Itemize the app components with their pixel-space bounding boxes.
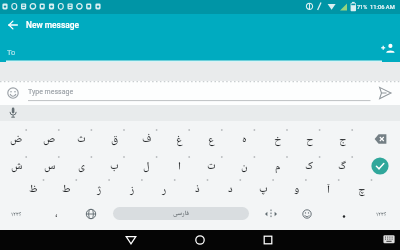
staticText: ف	[142, 132, 152, 147]
button[interactable]: ن	[228, 153, 261, 179]
button[interactable]: س	[33, 153, 66, 179]
button[interactable]	[117, 230, 145, 250]
staticText: ،	[55, 207, 58, 221]
button[interactable]: ق	[98, 126, 131, 152]
button[interactable]	[362, 153, 398, 179]
button[interactable]: ع	[195, 126, 228, 152]
button[interactable]	[379, 39, 399, 59]
button[interactable]: ،	[43, 202, 69, 226]
button[interactable]	[186, 230, 214, 250]
button[interactable]	[5, 85, 21, 101]
staticText: ح	[306, 132, 314, 147]
staticText: ج	[339, 132, 347, 147]
staticText: ت	[207, 159, 216, 174]
button[interactable]: آ	[312, 176, 345, 202]
staticText: د	[228, 182, 233, 197]
staticText: To	[7, 48, 16, 57]
button[interactable]	[258, 202, 284, 226]
button[interactable]: ا	[163, 153, 196, 179]
button[interactable]	[2, 15, 24, 35]
staticText: س	[44, 159, 56, 174]
staticText: ی	[78, 159, 85, 174]
button[interactable]: گ	[326, 153, 359, 179]
button[interactable]: پ	[247, 176, 280, 202]
staticText: ق	[111, 132, 119, 147]
button[interactable]	[332, 202, 356, 226]
button[interactable]: غ	[163, 126, 196, 152]
button[interactable]	[374, 83, 396, 103]
staticText: گ	[338, 159, 347, 174]
button[interactable]: ط	[50, 176, 83, 202]
staticText: ژ	[97, 182, 102, 197]
button[interactable]: فارسی	[113, 207, 249, 220]
button[interactable]: و	[280, 176, 313, 202]
button[interactable]: م	[261, 153, 294, 179]
button[interactable]: ک	[293, 153, 326, 179]
button[interactable]: ه	[228, 126, 261, 152]
staticText: چ	[358, 182, 366, 197]
staticText: Type message	[28, 88, 74, 96]
button[interactable]: ر	[148, 176, 181, 202]
button[interactable]: ص	[33, 126, 66, 152]
staticText: ز	[130, 182, 135, 197]
button[interactable]: ف	[130, 126, 163, 152]
button[interactable]	[254, 230, 282, 250]
button[interactable]	[362, 126, 398, 152]
staticText: New message	[26, 20, 80, 30]
button[interactable]	[378, 230, 400, 250]
staticText: خ	[274, 132, 282, 147]
button[interactable]: خ	[261, 126, 294, 152]
staticText: ع	[208, 132, 215, 147]
staticText: 71%	[357, 4, 368, 10]
button[interactable]: ذ	[181, 176, 214, 202]
staticText: ث	[77, 132, 86, 147]
staticText: ا	[178, 159, 181, 174]
staticText: ش	[11, 159, 23, 174]
staticText: و	[294, 182, 300, 197]
staticText: ب	[110, 159, 119, 174]
staticText: ط	[62, 182, 71, 197]
staticText: ذ	[195, 182, 200, 197]
staticText: ظ	[29, 182, 38, 197]
button[interactable]: ؟۱۲۳	[0, 202, 33, 226]
button[interactable]: د	[214, 176, 247, 202]
staticText: 11:06 AM	[370, 4, 395, 11]
button[interactable]	[78, 202, 104, 226]
staticText: م	[275, 159, 281, 174]
button[interactable]	[5, 105, 21, 121]
button[interactable]: ی	[65, 153, 98, 179]
button[interactable]: Type message	[28, 81, 358, 103]
staticText: ص	[43, 132, 56, 147]
button[interactable]	[294, 202, 320, 226]
staticText: فارسی	[173, 209, 190, 218]
button[interactable]: ش	[0, 153, 33, 179]
button[interactable]: To	[7, 44, 377, 60]
button[interactable]: ل	[130, 153, 163, 179]
staticText: ؟۱۲۳	[376, 210, 387, 218]
staticText: ؟۱۲۳	[11, 210, 22, 218]
button[interactable]: ظ	[17, 176, 50, 202]
button[interactable]: ت	[195, 153, 228, 179]
staticText: پ	[259, 182, 268, 197]
button[interactable]: ج	[326, 126, 359, 152]
staticText: ن	[241, 159, 248, 174]
staticText: ر	[162, 182, 167, 197]
staticText: آ	[327, 182, 330, 197]
button[interactable]: ث	[65, 126, 98, 152]
staticText: ه	[242, 132, 247, 147]
staticText: ل	[143, 159, 150, 174]
button[interactable]: ؟۱۲۳	[364, 202, 398, 226]
button[interactable]: ز	[116, 176, 149, 202]
staticText: ک	[305, 159, 314, 174]
button[interactable]: ژ	[83, 176, 116, 202]
button[interactable]: چ	[345, 176, 378, 202]
button[interactable]: ب	[98, 153, 131, 179]
staticText: ض	[10, 132, 23, 147]
staticText: غ	[176, 132, 183, 147]
button[interactable]: ح	[293, 126, 326, 152]
button[interactable]: ض	[0, 126, 33, 152]
